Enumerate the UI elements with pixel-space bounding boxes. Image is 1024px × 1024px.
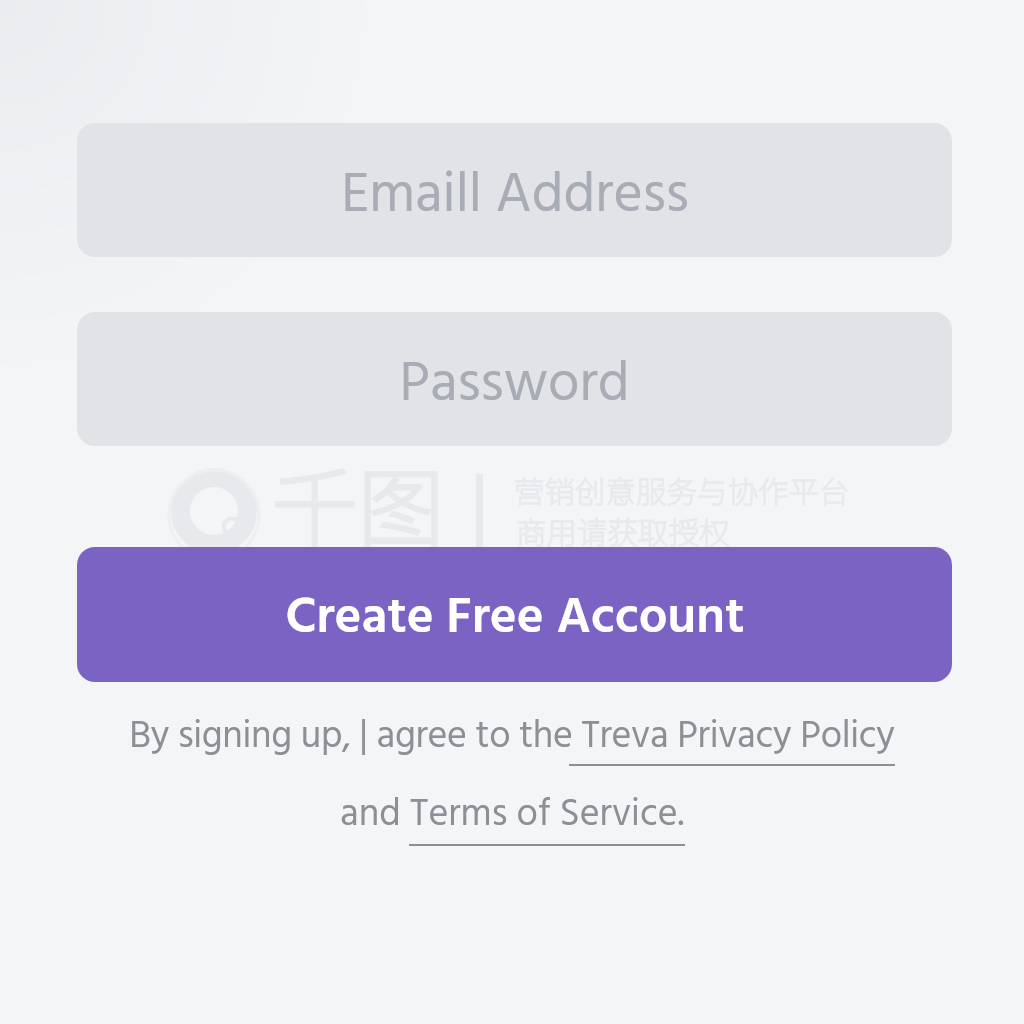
button[interactable]: Emaill Address bbox=[77, 123, 952, 257]
staticText: 商用请获取授权 bbox=[516, 509, 730, 553]
button[interactable]: Create Free Account bbox=[77, 547, 952, 682]
button[interactable]: Treva Privacy Policy bbox=[569, 712, 895, 768]
button[interactable]: Terms of Service bbox=[409, 792, 685, 848]
staticText: and Terms of Service. bbox=[340, 785, 684, 845]
staticText: 千图 bbox=[272, 440, 444, 565]
staticText: Create Free Account bbox=[285, 578, 745, 660]
staticText: 营销创意服务与协作平台 bbox=[514, 468, 850, 512]
staticText: By signing up, | agree to the Treva Priv… bbox=[129, 707, 895, 767]
staticText: Emaill Address bbox=[341, 152, 689, 242]
button[interactable]: Password bbox=[77, 312, 952, 446]
staticText: Password bbox=[399, 341, 630, 431]
